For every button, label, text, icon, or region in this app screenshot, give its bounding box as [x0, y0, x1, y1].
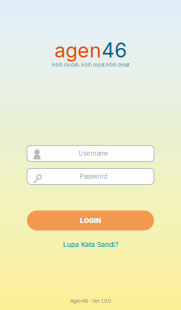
button[interactable]: Username: [27, 145, 154, 161]
staticText: Password: [79, 173, 107, 180]
button[interactable]: Lupa Kata Sandi?: [63, 240, 118, 248]
staticText: Username: [78, 150, 108, 157]
staticText: 46: [101, 38, 126, 62]
staticText: LOGIN: [80, 216, 101, 224]
button[interactable]: Password: [27, 168, 154, 184]
button[interactable]: LOGIN: [27, 210, 154, 230]
staticText: agen: [54, 38, 101, 62]
staticText: Agen46 - Ver.1.0.0: [70, 298, 111, 304]
staticText: lebih mudah, lebih cepat, lebih dekat: [52, 62, 129, 67]
staticText: Lupa Kata Sandi?: [63, 240, 118, 248]
